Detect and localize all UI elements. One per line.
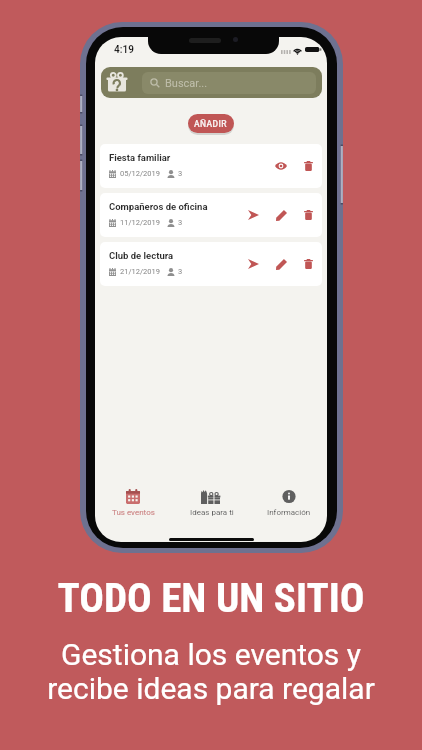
button[interactable]: Compañeros de oficina bbox=[100, 193, 322, 237]
button[interactable]: Enviar bbox=[244, 206, 262, 224]
staticText: Club de lectura bbox=[109, 250, 174, 261]
button[interactable]: Tus eventos bbox=[103, 486, 163, 520]
button[interactable]: AÑADIR bbox=[188, 114, 234, 133]
staticText: 3 bbox=[178, 267, 183, 276]
staticText: 3 bbox=[178, 218, 183, 227]
button[interactable]: Enviar bbox=[244, 255, 262, 273]
button[interactable]: Editar bbox=[272, 206, 290, 224]
staticText: Tus eventos bbox=[112, 508, 155, 517]
button[interactable]: Eliminar bbox=[299, 157, 317, 175]
button[interactable]: Fiesta familiar bbox=[100, 144, 322, 188]
staticText: Gestiona los eventos y recibe ideas para… bbox=[47, 637, 375, 706]
staticText: AÑADIR bbox=[194, 119, 228, 129]
button[interactable]: Buscar... bbox=[142, 72, 316, 94]
button[interactable]: Editar bbox=[272, 255, 290, 273]
staticText: TODO EN UN SITIO bbox=[57, 574, 365, 622]
staticText: 21/12/2019 bbox=[120, 267, 160, 276]
staticText: Información bbox=[267, 508, 311, 517]
staticText: Fiesta familiar bbox=[109, 152, 171, 163]
staticText: 05/12/2019 bbox=[120, 169, 160, 178]
staticText: 4:19 bbox=[114, 44, 134, 56]
staticText: 11/12/2019 bbox=[120, 218, 160, 227]
staticText: Ideas para ti bbox=[190, 508, 234, 517]
button[interactable]: Información bbox=[259, 486, 319, 520]
button[interactable]: Ideas para ti bbox=[182, 486, 242, 520]
button[interactable]: Regalos bbox=[105, 70, 129, 95]
button[interactable]: Ver bbox=[272, 157, 290, 175]
staticText: Buscar... bbox=[165, 77, 208, 90]
staticText: Compañeros de oficina bbox=[109, 201, 208, 212]
staticText: 3 bbox=[178, 169, 183, 178]
button[interactable]: Club de lectura bbox=[100, 242, 322, 286]
button[interactable]: Eliminar bbox=[299, 255, 317, 273]
button[interactable]: Eliminar bbox=[299, 206, 317, 224]
